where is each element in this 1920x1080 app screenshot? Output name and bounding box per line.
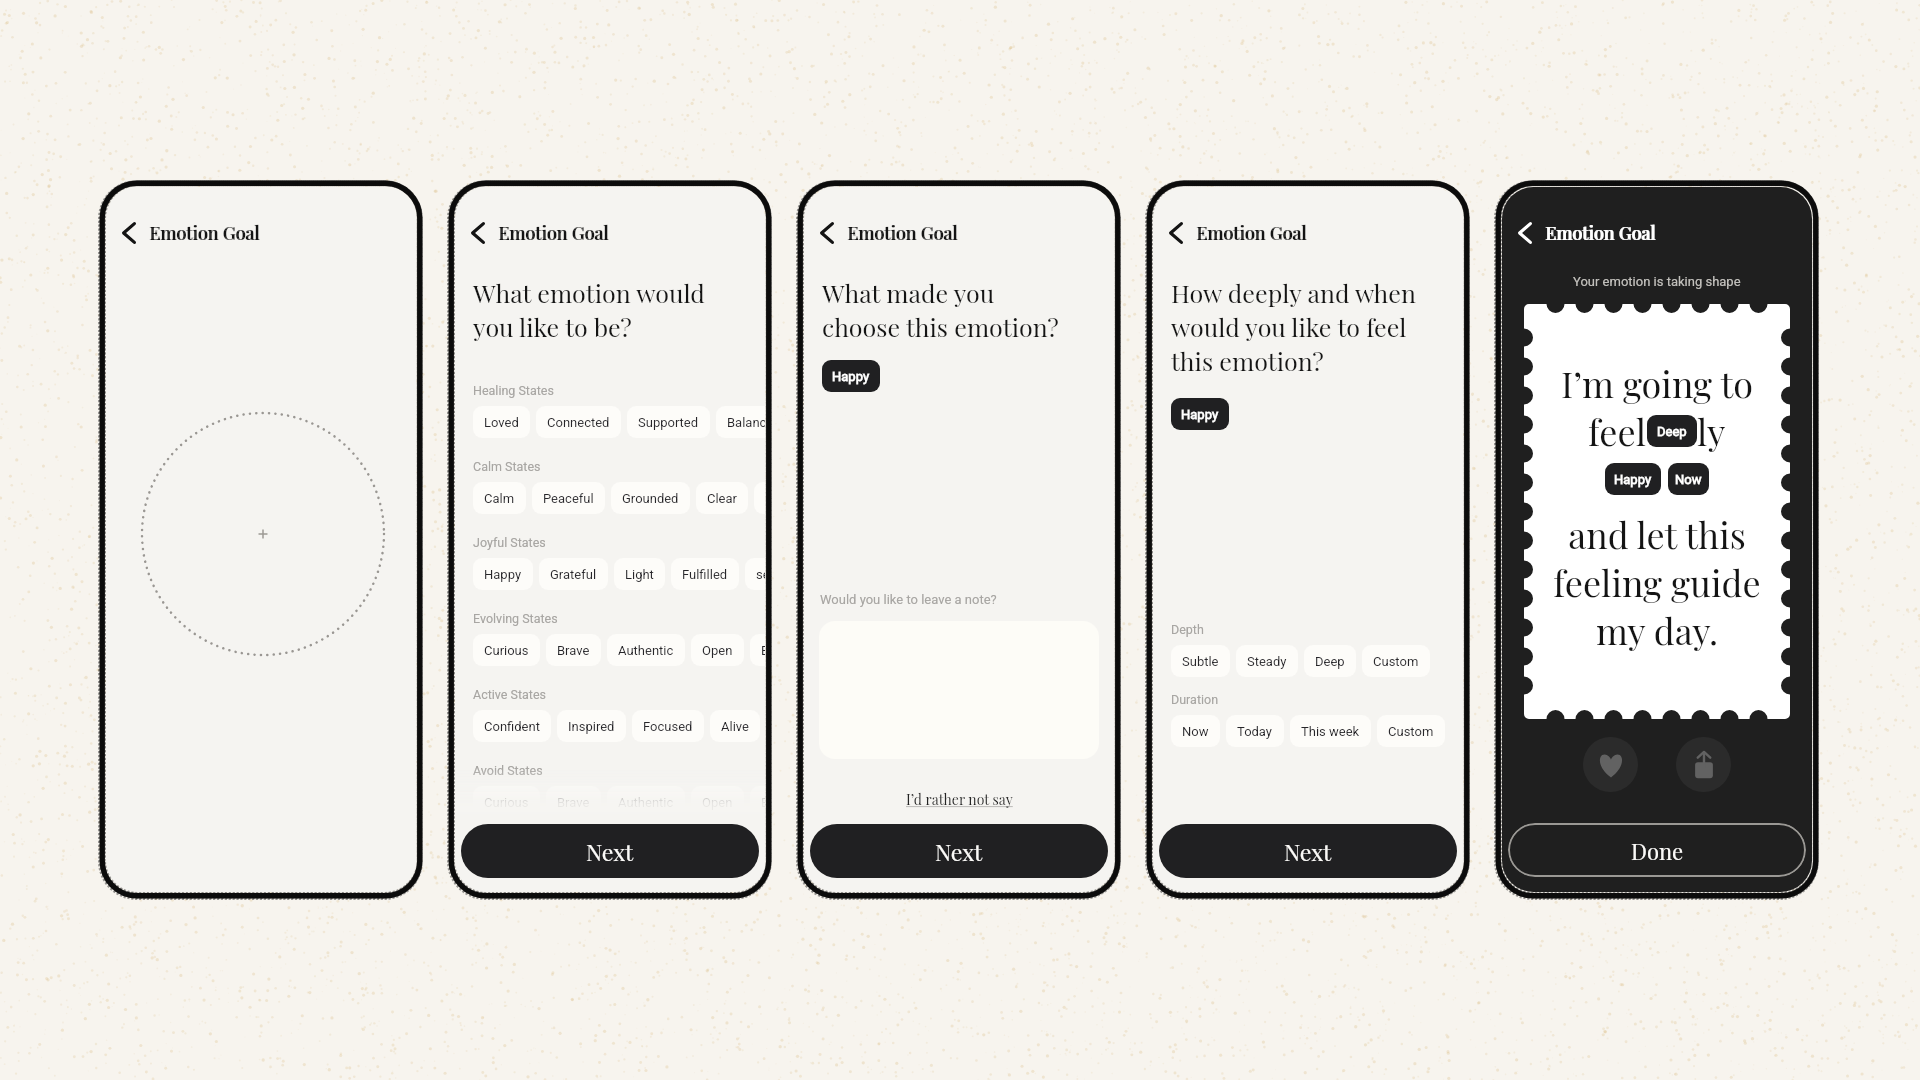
button[interactable]: Happy [1605, 463, 1661, 495]
button[interactable]: Happy [1171, 398, 1229, 430]
staticText: Grateful [550, 567, 597, 582]
button[interactable]: Happy [473, 558, 533, 590]
button[interactable]: Authentic [607, 634, 685, 666]
button[interactable]: serene [745, 558, 765, 590]
staticText: Calm [484, 491, 515, 506]
button[interactable]: Back [1502, 187, 1812, 279]
button[interactable]: Curious [473, 786, 540, 818]
staticText: Emotion Goal [499, 221, 610, 245]
staticText: Peaceful [543, 491, 594, 506]
button[interactable]: Focused [632, 710, 704, 742]
staticText: Fulfilled [682, 567, 728, 582]
staticText: Now [1182, 724, 1209, 739]
staticText: How deeply and when would you like to fe… [1171, 276, 1416, 377]
button[interactable]: Back [1153, 187, 1463, 279]
staticText: This week [1301, 724, 1360, 739]
staticText: Emotion Goal [149, 221, 260, 245]
button[interactable]: Inspired [557, 710, 626, 742]
staticText: Happy [832, 369, 870, 384]
staticText: and let this feeling guide my day. [1553, 510, 1761, 654]
button[interactable]: Brave [546, 786, 601, 818]
staticText: Connected [547, 415, 610, 430]
staticText: serene [756, 567, 765, 582]
staticText: Grounded [622, 491, 679, 506]
staticText: Subtle [1182, 654, 1219, 669]
staticText: Would you like to leave a note? [820, 592, 1114, 607]
button[interactable]: Open [691, 786, 744, 818]
staticText: Emotion Goal [1545, 221, 1656, 245]
button[interactable]: Happy [822, 360, 880, 392]
staticText: Steady [1247, 654, 1287, 669]
button[interactable]: Subtle [1171, 645, 1230, 677]
staticText: ly [1697, 407, 1726, 455]
button[interactable]: Now [1171, 715, 1220, 747]
button[interactable]: Steady [1236, 645, 1298, 677]
button[interactable]: Deep [1304, 645, 1356, 677]
staticText: I’m going to [1561, 359, 1753, 407]
staticText: Brave [557, 643, 590, 658]
button[interactable]: Fulfilled [671, 558, 739, 590]
button[interactable]: Next [1159, 824, 1457, 878]
staticText: feel [1588, 407, 1647, 455]
button[interactable]: Deep [1647, 415, 1697, 447]
staticText: Joyful States [473, 535, 546, 550]
button[interactable]: Balanced [716, 406, 765, 438]
button[interactable]: Expansive [750, 786, 765, 818]
button[interactable]: I’d rather not say [906, 790, 1013, 809]
button[interactable]: Today [1226, 715, 1284, 747]
button[interactable]: Next [461, 824, 759, 878]
staticText: Healing States [473, 383, 554, 398]
staticText: What emotion would you like to be? [473, 276, 705, 343]
button[interactable]: Peaceful [532, 482, 605, 514]
staticText: Depth [1171, 622, 1204, 637]
staticText: Done [1631, 836, 1684, 865]
button[interactable]: Curious [473, 634, 540, 666]
button[interactable]: Custom [1362, 645, 1430, 677]
button[interactable]: Share [1676, 737, 1731, 792]
button[interactable]: Next [810, 824, 1108, 878]
button[interactable]: This week [1290, 715, 1371, 747]
button[interactable]: Calm [473, 482, 526, 514]
button[interactable]: Loved [473, 406, 530, 438]
button[interactable]: Favorite [1583, 737, 1638, 792]
button[interactable]: Done [1508, 823, 1806, 877]
staticText: What made you choose this emotion? [822, 276, 1059, 343]
staticText: Today [1237, 724, 1273, 739]
button[interactable]: Authentic [607, 786, 685, 818]
button[interactable]: Custom [1377, 715, 1445, 747]
button[interactable]: Connected [536, 406, 621, 438]
staticText: Open [702, 795, 733, 810]
staticText: Calm States [473, 459, 541, 474]
button[interactable]: Back [804, 187, 1114, 279]
staticText: Duration [1171, 692, 1219, 707]
staticText: Happy [484, 567, 522, 582]
staticText: Emotion Goal [150, 221, 261, 245]
button[interactable]: Expansive [750, 634, 765, 666]
staticText: Curious [484, 795, 529, 810]
button[interactable]: Back [455, 187, 765, 279]
staticText: Expansive [761, 795, 765, 810]
button[interactable]: Grounded [611, 482, 690, 514]
staticText: Emotion Goal [1197, 221, 1308, 245]
button[interactable]: Alive [710, 710, 760, 742]
button[interactable]: Clear [696, 482, 748, 514]
button[interactable]: Grateful [539, 558, 608, 590]
button[interactable]: Brave [546, 634, 601, 666]
staticText: Brave [557, 795, 590, 810]
button[interactable]: Confident [473, 710, 551, 742]
button[interactable]: Open [691, 634, 744, 666]
staticText: Alive [721, 719, 749, 734]
staticText: Active States [473, 687, 547, 702]
staticText: Loved [484, 415, 519, 430]
staticText: Next [586, 836, 634, 867]
staticText: Supported [638, 415, 699, 430]
button[interactable]: Back [106, 187, 416, 279]
other: Back [122, 222, 136, 244]
button[interactable]: Now [1668, 463, 1709, 495]
button[interactable]: Supported [627, 406, 710, 438]
button[interactable]: Light [614, 558, 665, 590]
staticText: Emotion Goal [847, 221, 958, 245]
other: Back [820, 222, 834, 244]
